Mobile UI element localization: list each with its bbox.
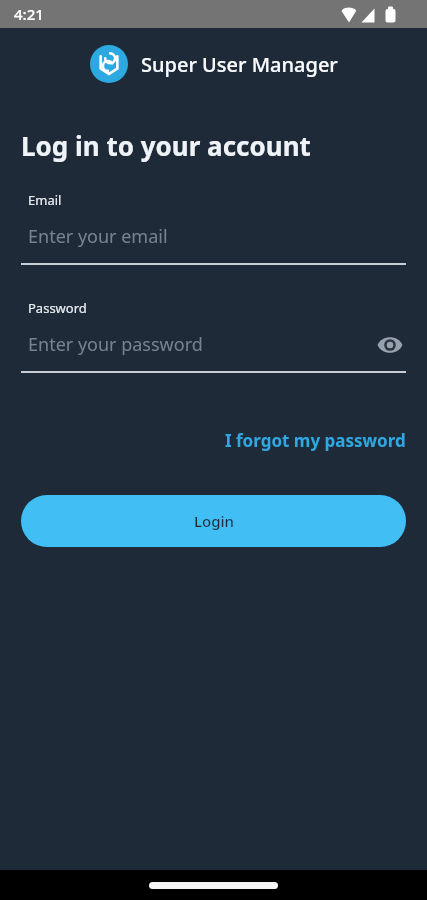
staticText: Enter your password — [28, 332, 377, 357]
staticText: Password — [28, 299, 87, 317]
staticText: 4:21 — [14, 4, 44, 24]
button[interactable]: Login — [21, 495, 406, 547]
staticText: Super User Manager — [141, 51, 338, 78]
staticText: Log in to your account — [21, 128, 311, 163]
staticText: Login — [194, 511, 234, 531]
staticText: Email — [28, 191, 62, 209]
staticText: Enter your email — [28, 224, 168, 249]
button[interactable] — [377, 335, 403, 355]
button[interactable]: Enter your email — [0, 224, 427, 249]
button[interactable]: I forgot my password — [225, 429, 406, 452]
button[interactable]: Enter your password — [28, 332, 403, 357]
